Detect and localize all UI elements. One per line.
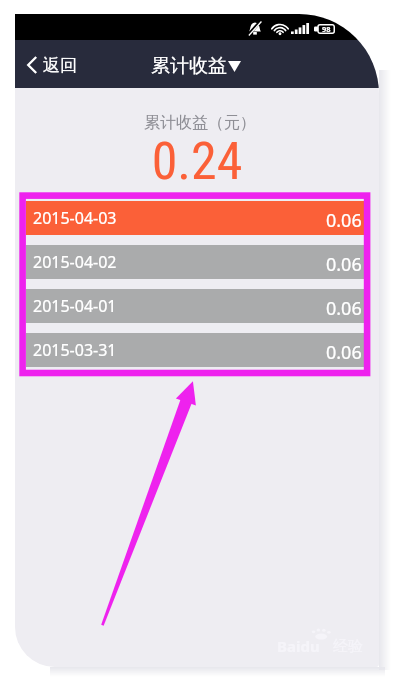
button[interactable]: 2015-04-01 [26,289,364,323]
button[interactable]: Back [15,46,89,83]
staticText: 98 [322,24,331,34]
staticText: 0.06 [326,208,362,233]
other: Back [27,57,37,73]
button[interactable]: 2015-04-02 [26,245,364,279]
staticText: 累计收益（元） [18,113,379,133]
button[interactable]: 2015-03-31 [26,333,364,367]
button[interactable]: 累计收益 [151,54,241,78]
staticText: 0.24 [15,131,379,192]
staticText: 累计收益 [151,54,227,78]
staticText: 返回 [43,55,77,76]
staticText: 2015-04-03 [33,207,117,229]
staticText: 2015-04-01 [33,295,117,317]
staticText: 2015-04-02 [33,251,117,273]
staticText: 0.06 [326,252,362,277]
staticText: 0.06 [326,340,362,365]
staticText: 2015-03-31 [33,339,117,361]
staticText: 0.06 [326,296,362,321]
button[interactable]: 2015-04-03 [26,201,364,235]
